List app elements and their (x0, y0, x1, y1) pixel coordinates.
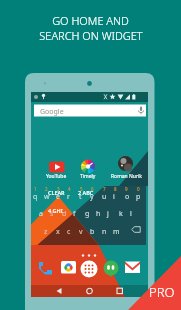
staticText: a (39, 209, 43, 219)
staticText: 1 (34, 186, 37, 192)
staticText: 6 (91, 186, 94, 192)
staticText: 2 (45, 186, 48, 192)
staticText: j (107, 209, 109, 219)
staticText: 4 GHI (48, 207, 63, 214)
staticText: z (44, 227, 48, 237)
staticText: Google (40, 107, 64, 117)
staticText: Timely (80, 173, 96, 180)
staticText: m (113, 227, 120, 237)
staticText: w (44, 192, 50, 202)
staticText: q (33, 192, 38, 202)
staticText: s (50, 209, 54, 219)
staticText: c (67, 227, 71, 237)
staticText: t (79, 192, 82, 202)
staticText: x (56, 227, 60, 237)
staticText: d (62, 209, 67, 219)
staticText: r (67, 192, 70, 202)
staticText: GO HOME AND (52, 13, 129, 28)
staticText: e (56, 192, 60, 202)
staticText: u (102, 192, 107, 202)
staticText: PRO (149, 283, 175, 301)
staticText: CLEAR (48, 189, 65, 196)
staticText: n (102, 227, 107, 237)
staticText: 9 (125, 186, 128, 192)
staticText: o (125, 192, 130, 202)
staticText: 3 (57, 186, 60, 192)
staticText: k (119, 209, 123, 219)
staticText: i (113, 192, 115, 202)
staticText: 0 (137, 186, 140, 192)
staticText: Roman Nurik (111, 173, 142, 180)
staticText: g (85, 209, 90, 219)
staticText: YouTube (46, 173, 67, 180)
staticText: p (136, 192, 141, 202)
staticText: l (130, 209, 132, 219)
staticText: 5 (80, 186, 83, 192)
staticText: 2 ABC (78, 189, 94, 196)
staticText: f (73, 209, 76, 219)
staticText: SEARCH ON WIDGET (39, 28, 143, 43)
staticText: h (96, 209, 101, 219)
staticText: 7 (103, 186, 106, 192)
staticText: v (79, 227, 83, 237)
staticText: b (90, 227, 95, 237)
staticText: 4 (68, 186, 71, 192)
staticText: 8 (114, 186, 117, 192)
staticText: y (90, 192, 94, 202)
